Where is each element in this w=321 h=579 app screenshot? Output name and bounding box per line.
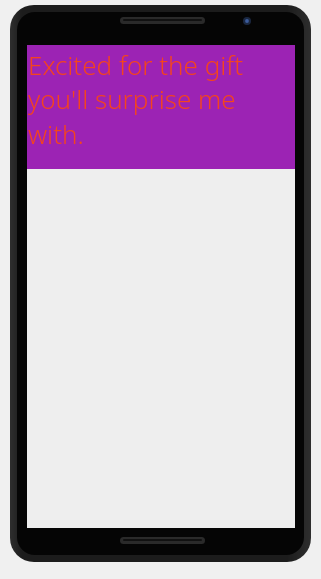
staticText: Excited for the gift you'll surprise me …	[28, 47, 296, 152]
button[interactable]: Excited for the gift you'll surprise me …	[27, 45, 295, 169]
